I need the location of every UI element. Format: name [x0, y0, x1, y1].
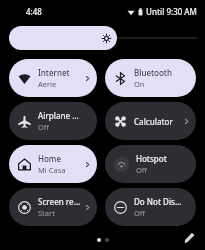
button[interactable]: Hotspot	[105, 145, 196, 183]
staticText: Do Not Disturb	[134, 196, 183, 207]
button[interactable]: Bluetooth	[105, 59, 196, 97]
staticText: 4:48	[26, 6, 42, 17]
button[interactable]: Edit	[181, 229, 197, 245]
button[interactable]: Brightness	[9, 26, 117, 50]
staticText: Aerie	[38, 79, 57, 89]
button[interactable]: Calculator	[105, 102, 196, 140]
button[interactable]: Home	[9, 145, 97, 183]
staticText: Hotspot	[136, 153, 167, 164]
button[interactable]: Screen record	[9, 188, 97, 226]
button[interactable]: Airplane mode	[9, 102, 97, 140]
staticText: Until 9:30 AM	[146, 6, 197, 17]
button[interactable]: Internet	[9, 59, 97, 97]
button[interactable]: Do Not Disturb	[105, 188, 196, 226]
staticText: Off	[134, 208, 146, 218]
staticText: Off	[136, 165, 148, 175]
staticText: Off	[38, 122, 50, 132]
staticText: Mi Casa	[38, 165, 66, 175]
staticText: On	[134, 79, 145, 89]
staticText: Start	[38, 208, 55, 218]
staticText: Bluetooth	[134, 67, 172, 78]
staticText: Screen record	[38, 196, 84, 207]
staticText: Home	[38, 153, 62, 164]
staticText: Calculator	[134, 116, 173, 127]
staticText: Airplane mode	[38, 110, 84, 121]
staticText: Internet	[38, 67, 70, 78]
